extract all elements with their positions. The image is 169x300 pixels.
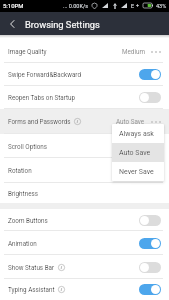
- staticText: Browsing Settings: [25, 19, 100, 30]
- button[interactable]: On: [139, 284, 161, 295]
- staticText: Image Quality: [8, 48, 47, 55]
- staticText: Never Save: [119, 168, 154, 176]
- staticText: Auto Save: [116, 118, 145, 125]
- button[interactable]: Swipe Forward&Backward: [0, 63, 169, 86]
- button[interactable]: Image Quality: [0, 39, 169, 63]
- button[interactable]: Forms and Passwords: [0, 109, 169, 134]
- staticText: Show Status Bar: [8, 264, 55, 271]
- button[interactable]: Brightness: [0, 183, 169, 203]
- staticText: 5:10PM: [3, 2, 24, 9]
- staticText: Swipe Forward&Backward: [8, 71, 81, 78]
- staticText: Rotation: [8, 167, 32, 174]
- button[interactable]: Off: [139, 262, 161, 273]
- button[interactable]: Animation: [0, 231, 169, 255]
- button[interactable]: On: [139, 69, 161, 80]
- button[interactable]: Always ask: [112, 124, 164, 143]
- button[interactable]: Scroll Options: [0, 134, 169, 158]
- staticText: Animation: [8, 240, 37, 247]
- button[interactable]: Never Save: [112, 162, 164, 181]
- staticText: Forms and Passwords: [8, 118, 71, 125]
- button[interactable]: Rotation: [0, 158, 169, 183]
- staticText: 43%: [156, 3, 167, 9]
- button[interactable]: Zoom Buttons: [0, 209, 169, 231]
- button[interactable]: Back: [4, 12, 21, 35]
- button[interactable]: Off: [139, 215, 161, 226]
- staticText: Reopen Tabs on Startup: [8, 94, 75, 101]
- staticText: Typing Assistant: [8, 286, 55, 293]
- button[interactable]: Auto Save: [112, 143, 164, 162]
- staticText: Medium: [122, 48, 145, 55]
- button[interactable]: Typing Assistant: [0, 279, 169, 300]
- button[interactable]: On: [139, 238, 161, 249]
- staticText: Brightness: [8, 190, 38, 197]
- staticText: E: [131, 3, 135, 9]
- button[interactable]: Off: [139, 92, 161, 103]
- staticText: Auto Save: [119, 149, 151, 157]
- button[interactable]: Reopen Tabs on Startup: [0, 86, 169, 109]
- button[interactable]: Show Status Bar: [0, 255, 169, 279]
- staticText: Always ask: [119, 130, 154, 138]
- staticText: ... 0.00K/s: [63, 3, 88, 9]
- staticText: Scroll Options: [8, 143, 48, 150]
- staticText: Zoom Buttons: [8, 217, 48, 224]
